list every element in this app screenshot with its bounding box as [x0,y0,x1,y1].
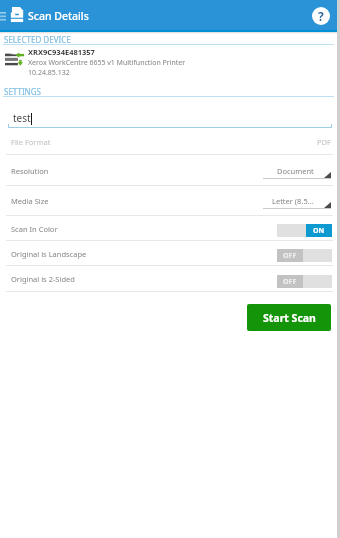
staticText: Media Size [11,196,49,206]
staticText: ON [313,226,325,236]
staticText: Document [277,166,314,176]
staticText: Letter (8.5... [272,196,314,206]
staticText: Start Scan [263,311,316,325]
button[interactable]: Original is Landscape [0,241,340,266]
button[interactable]: Navigation menu [0,0,10,32]
staticText: ? [318,8,324,24]
button[interactable]: Help [307,2,335,30]
staticText: File Format [11,137,51,147]
staticText: SETTINGS [4,86,41,97]
button[interactable]: Media Size [0,186,340,216]
button[interactable]: Scan In Color [0,216,340,241]
staticText: SELECTED DEVICE [4,34,71,45]
staticText: test [13,111,31,125]
staticText: Original is Landscape [11,249,87,259]
staticText: Xerox WorkCentre 6655 v1 Multifunction P… [28,58,186,68]
staticText: XRX9C934E481357 [28,47,95,57]
staticText: Scan In Color [11,224,58,234]
staticText: OFF [283,277,297,287]
staticText: Resolution [11,166,49,176]
button[interactable]: File Format [0,128,340,155]
button[interactable]: Original is 2-Sided [0,266,340,292]
staticText: Scan Details [28,9,89,23]
button[interactable]: Resolution [0,155,340,186]
button[interactable]: Start Scan [247,304,331,331]
staticText: Original is 2-Sided [11,274,75,284]
staticText: OFF [283,251,297,261]
staticText: 10.24.85.132 [28,68,70,78]
staticText: PDF [317,137,331,147]
